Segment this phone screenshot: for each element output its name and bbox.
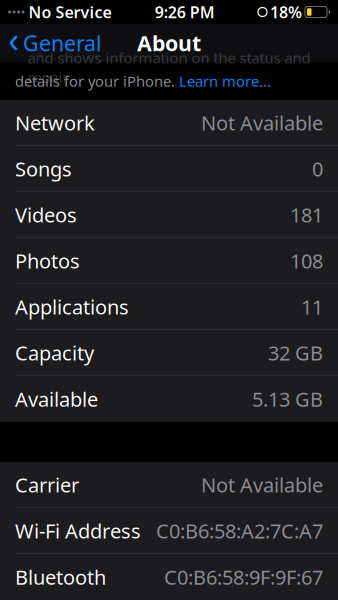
staticText: 181 [290, 201, 323, 228]
staticText: C0:B6:58:A2:7C:A7 [156, 517, 323, 544]
staticText: details for your iPhone. [15, 71, 179, 91]
staticText: About [137, 29, 201, 57]
staticText: Network [15, 109, 95, 136]
button[interactable]: Applications [0, 284, 338, 330]
staticText: 0 [312, 155, 323, 182]
staticText: Photos [15, 247, 80, 274]
staticText: Bluetooth [15, 564, 106, 590]
staticText: 9:26 PM [155, 1, 215, 23]
staticText: General [23, 29, 102, 57]
staticText: No Service [28, 1, 111, 23]
button[interactable]: General [0, 24, 110, 62]
button[interactable]: Videos [0, 192, 338, 238]
staticText: 18% [270, 1, 302, 23]
button[interactable]: Capacity [0, 330, 338, 376]
staticText: C0:B6:58:9F:9F:67 [164, 564, 323, 590]
staticText: 5.13 GB [252, 386, 323, 412]
staticText: Videos [15, 201, 77, 228]
staticText: Applications [15, 293, 129, 320]
staticText: 11 [301, 293, 323, 320]
button[interactable]: Bluetooth [0, 554, 338, 600]
button[interactable]: Available [0, 376, 338, 422]
staticText: and shows information on the status and … [27, 48, 310, 87]
button[interactable]: Songs [0, 146, 338, 192]
staticText: Capacity [15, 339, 94, 366]
staticText: Carrier [15, 471, 79, 498]
button[interactable]: Network [0, 100, 338, 146]
staticText: Learn more... [179, 71, 271, 91]
staticText: Not Available [201, 109, 323, 136]
staticText: 32 GB [268, 339, 323, 366]
button[interactable]: Learn more... [179, 71, 271, 91]
button[interactable]: Wi-Fi Address [0, 508, 338, 554]
button[interactable]: Photos [0, 238, 338, 284]
staticText: Not Available [201, 471, 323, 498]
staticText: Wi-Fi Address [15, 517, 141, 544]
staticText: 108 [290, 247, 323, 274]
staticText: Available [15, 386, 98, 412]
button[interactable]: Carrier [0, 462, 338, 508]
staticText: Songs [15, 155, 72, 182]
